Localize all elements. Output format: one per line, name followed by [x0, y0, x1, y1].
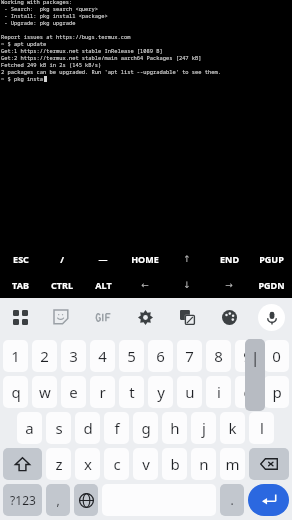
staticText: p: [272, 382, 282, 402]
button[interactable]: u: [177, 376, 202, 408]
button[interactable]: c: [104, 448, 129, 480]
button[interactable]: 2: [32, 340, 57, 372]
button[interactable]: Clipboard: [0, 298, 41, 336]
button[interactable]: g: [133, 412, 158, 444]
staticText: w: [39, 382, 51, 402]
button[interactable]: y: [148, 376, 173, 408]
staticText: j: [202, 418, 206, 438]
staticText: y: [157, 382, 165, 402]
button[interactable]: f: [104, 412, 129, 444]
button[interactable]: b: [162, 448, 187, 480]
button[interactable]: ESC: [0, 246, 41, 272]
staticText: ?123: [10, 492, 36, 508]
button[interactable]: Shift: [3, 448, 42, 480]
button[interactable]: 8: [206, 340, 231, 372]
button[interactable]: n: [191, 448, 216, 480]
staticText: ←: [141, 280, 149, 290]
staticText: m: [225, 454, 240, 474]
button[interactable]: t: [119, 376, 144, 408]
staticText: 1: [11, 346, 20, 366]
button[interactable]: ,: [46, 484, 70, 516]
button[interactable]: Enter: [248, 484, 289, 516]
staticText: 0: [272, 346, 281, 366]
staticText: 3: [69, 346, 78, 366]
button[interactable]: z: [46, 448, 71, 480]
button[interactable]: Left: [124, 272, 166, 298]
button[interactable]: 7: [177, 340, 202, 372]
button[interactable]: 0: [264, 340, 289, 372]
staticText: PGUP: [259, 253, 284, 265]
button[interactable]: HOME: [124, 246, 166, 272]
button[interactable]: o: [235, 376, 260, 408]
button[interactable]: j: [191, 412, 216, 444]
staticText: Get:2 https://termux.net stable/main aar…: [1, 54, 202, 61]
button[interactable]: d: [75, 412, 100, 444]
staticText: Fetched 249 kB in 2s (145 kB/s): [1, 61, 102, 68]
button[interactable]: Settings: [124, 298, 166, 336]
staticText: u: [185, 382, 195, 402]
button[interactable]: h: [162, 412, 187, 444]
staticText: |: [251, 347, 260, 367]
button[interactable]: GIF: [82, 298, 124, 336]
staticText: ↑: [183, 254, 191, 264]
staticText: e: [69, 382, 78, 402]
button[interactable]: Translate: [166, 298, 208, 336]
staticText: /: [60, 253, 64, 265]
button[interactable]: 4: [90, 340, 115, 372]
staticText: s: [55, 418, 63, 438]
button[interactable]: l: [249, 412, 274, 444]
button[interactable]: Up: [166, 246, 208, 272]
staticText: r: [99, 382, 106, 402]
staticText: 5: [127, 346, 136, 366]
staticText: .: [230, 492, 234, 508]
staticText: h: [170, 418, 180, 438]
staticText: 7: [185, 346, 194, 366]
button[interactable]: Down: [166, 272, 208, 298]
button[interactable]: q: [3, 376, 28, 408]
button[interactable]: Stickers: [41, 298, 82, 336]
staticText: HOME: [131, 253, 159, 265]
button[interactable]: Change language: [74, 484, 98, 516]
staticText: l: [260, 418, 264, 438]
button[interactable]: 6: [148, 340, 173, 372]
button[interactable]: .: [220, 484, 244, 516]
staticText: 8: [214, 346, 223, 366]
staticText: TAB: [12, 279, 29, 291]
button[interactable]: w: [32, 376, 57, 408]
button[interactable]: Themes: [208, 298, 250, 336]
button[interactable]: TAB: [0, 272, 41, 298]
button[interactable]: Voice input: [250, 298, 292, 336]
staticText: ~ $ pkg insta: [1, 75, 44, 82]
staticText: 6: [156, 346, 165, 366]
button[interactable]: p: [264, 376, 289, 408]
button[interactable]: x: [75, 448, 100, 480]
button[interactable]: —: [82, 246, 124, 272]
button[interactable]: s: [46, 412, 71, 444]
button[interactable]: ALT: [82, 272, 124, 298]
staticText: n: [199, 454, 209, 474]
staticText: f: [114, 418, 120, 438]
button[interactable]: 1: [3, 340, 28, 372]
button[interactable]: m: [220, 448, 245, 480]
button[interactable]: 9: [235, 340, 260, 372]
button[interactable]: a: [17, 412, 42, 444]
button[interactable]: r: [90, 376, 115, 408]
button[interactable]: 3: [61, 340, 86, 372]
button[interactable]: PGUP: [250, 246, 292, 272]
staticText: - Upgrade: pkg upgrade: [1, 19, 76, 26]
button[interactable]: PGDN: [250, 272, 292, 298]
button[interactable]: Right: [208, 272, 250, 298]
button[interactable]: /: [41, 246, 82, 272]
button[interactable]: ?123: [3, 484, 42, 516]
button[interactable]: Backspace: [249, 448, 289, 480]
button[interactable]: e: [61, 376, 86, 408]
button[interactable]: END: [208, 246, 250, 272]
button[interactable]: i: [206, 376, 231, 408]
button[interactable]: k: [220, 412, 245, 444]
button[interactable]: CTRL: [41, 272, 82, 298]
button[interactable]: 5: [119, 340, 144, 372]
button[interactable]: v: [133, 448, 158, 480]
staticText: →: [225, 280, 233, 290]
staticText: q: [11, 382, 21, 402]
